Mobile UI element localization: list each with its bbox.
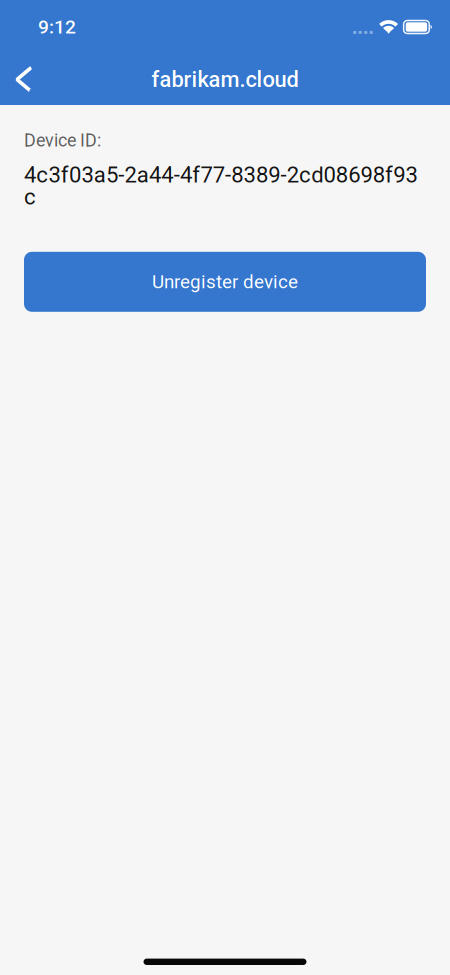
staticText: 4c3f03a5-2a44-4f77-8389-2cd08698f93c — [24, 162, 417, 210]
staticText: Unregister device — [152, 271, 298, 293]
staticText: 9:12 — [38, 16, 76, 38]
button[interactable]: Back — [0, 54, 46, 105]
staticText: Device ID: — [24, 130, 101, 151]
button[interactable]: Unregister device — [24, 252, 426, 312]
staticText: fabrikam.cloud — [151, 67, 298, 92]
